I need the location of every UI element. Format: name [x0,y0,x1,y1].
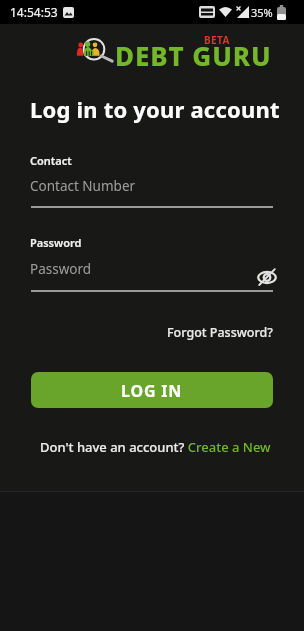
staticText: Forgot Password? [167,324,273,341]
staticText: Don't have an account? Create a New [40,438,271,456]
staticText: 35% [251,5,273,20]
button[interactable]: Don't have an account? Create a New [40,438,271,456]
button[interactable]: Forgot Password? [167,324,273,341]
staticText: Password [30,260,92,278]
staticText: BETA [204,33,230,47]
button[interactable] [257,267,277,287]
staticText: LOG IN [121,380,183,402]
staticText: DEBT GURU [115,38,272,73]
staticText: Log in to your account [30,94,280,124]
staticText: Contact [30,153,72,168]
staticText: Contact Number [30,177,136,195]
button[interactable]: LOG IN [31,372,273,408]
staticText: 14:54:53 [10,4,58,20]
staticText: Password [30,235,82,250]
